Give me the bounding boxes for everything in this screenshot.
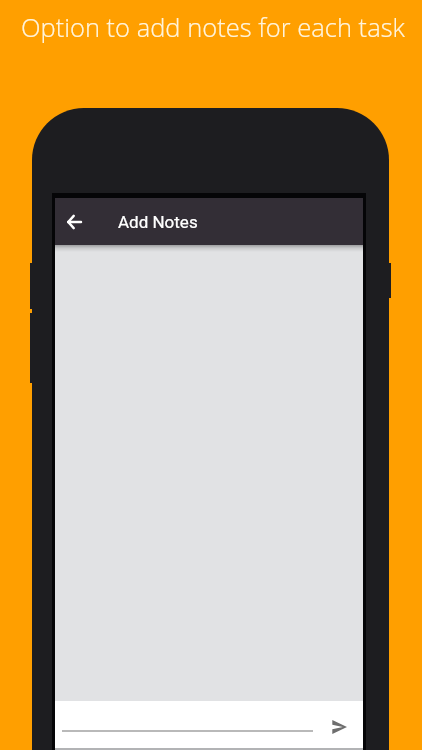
button[interactable] <box>62 730 313 747</box>
staticText: Add Notes <box>118 212 198 232</box>
staticText: Option to add notes for each task <box>21 10 405 45</box>
button[interactable]: Back <box>55 198 93 245</box>
button[interactable]: Send <box>315 701 363 748</box>
